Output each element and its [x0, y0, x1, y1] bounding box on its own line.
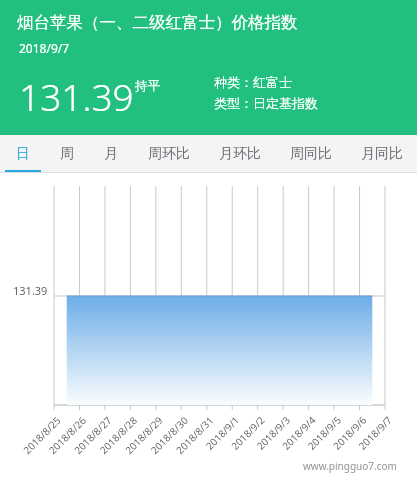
staticText: 月: [104, 145, 118, 163]
button[interactable]: 日: [0, 135, 45, 173]
staticText: 月同比: [361, 145, 403, 163]
staticText: 烟台苹果（一、二级红富士）价格指数: [17, 12, 298, 33]
button[interactable]: 月环比: [204, 135, 275, 173]
button[interactable]: 周环比: [133, 135, 204, 173]
staticText: 周同比: [290, 145, 332, 163]
staticText: 2018/9/7: [19, 40, 70, 56]
staticText: 类型：日定基指数: [214, 95, 318, 111]
button[interactable]: 周: [45, 135, 89, 173]
staticText: 周: [60, 145, 74, 163]
staticText: 月环比: [219, 145, 261, 163]
button[interactable]: 月: [89, 135, 133, 173]
button[interactable]: 周同比: [275, 135, 346, 173]
button[interactable]: 月同比: [346, 135, 417, 173]
staticText: 持平: [135, 78, 160, 94]
staticText: 种类：红富士: [214, 74, 292, 90]
staticText: 131.39: [19, 71, 134, 121]
staticText: 日: [16, 145, 30, 163]
staticText: 周环比: [148, 145, 190, 163]
